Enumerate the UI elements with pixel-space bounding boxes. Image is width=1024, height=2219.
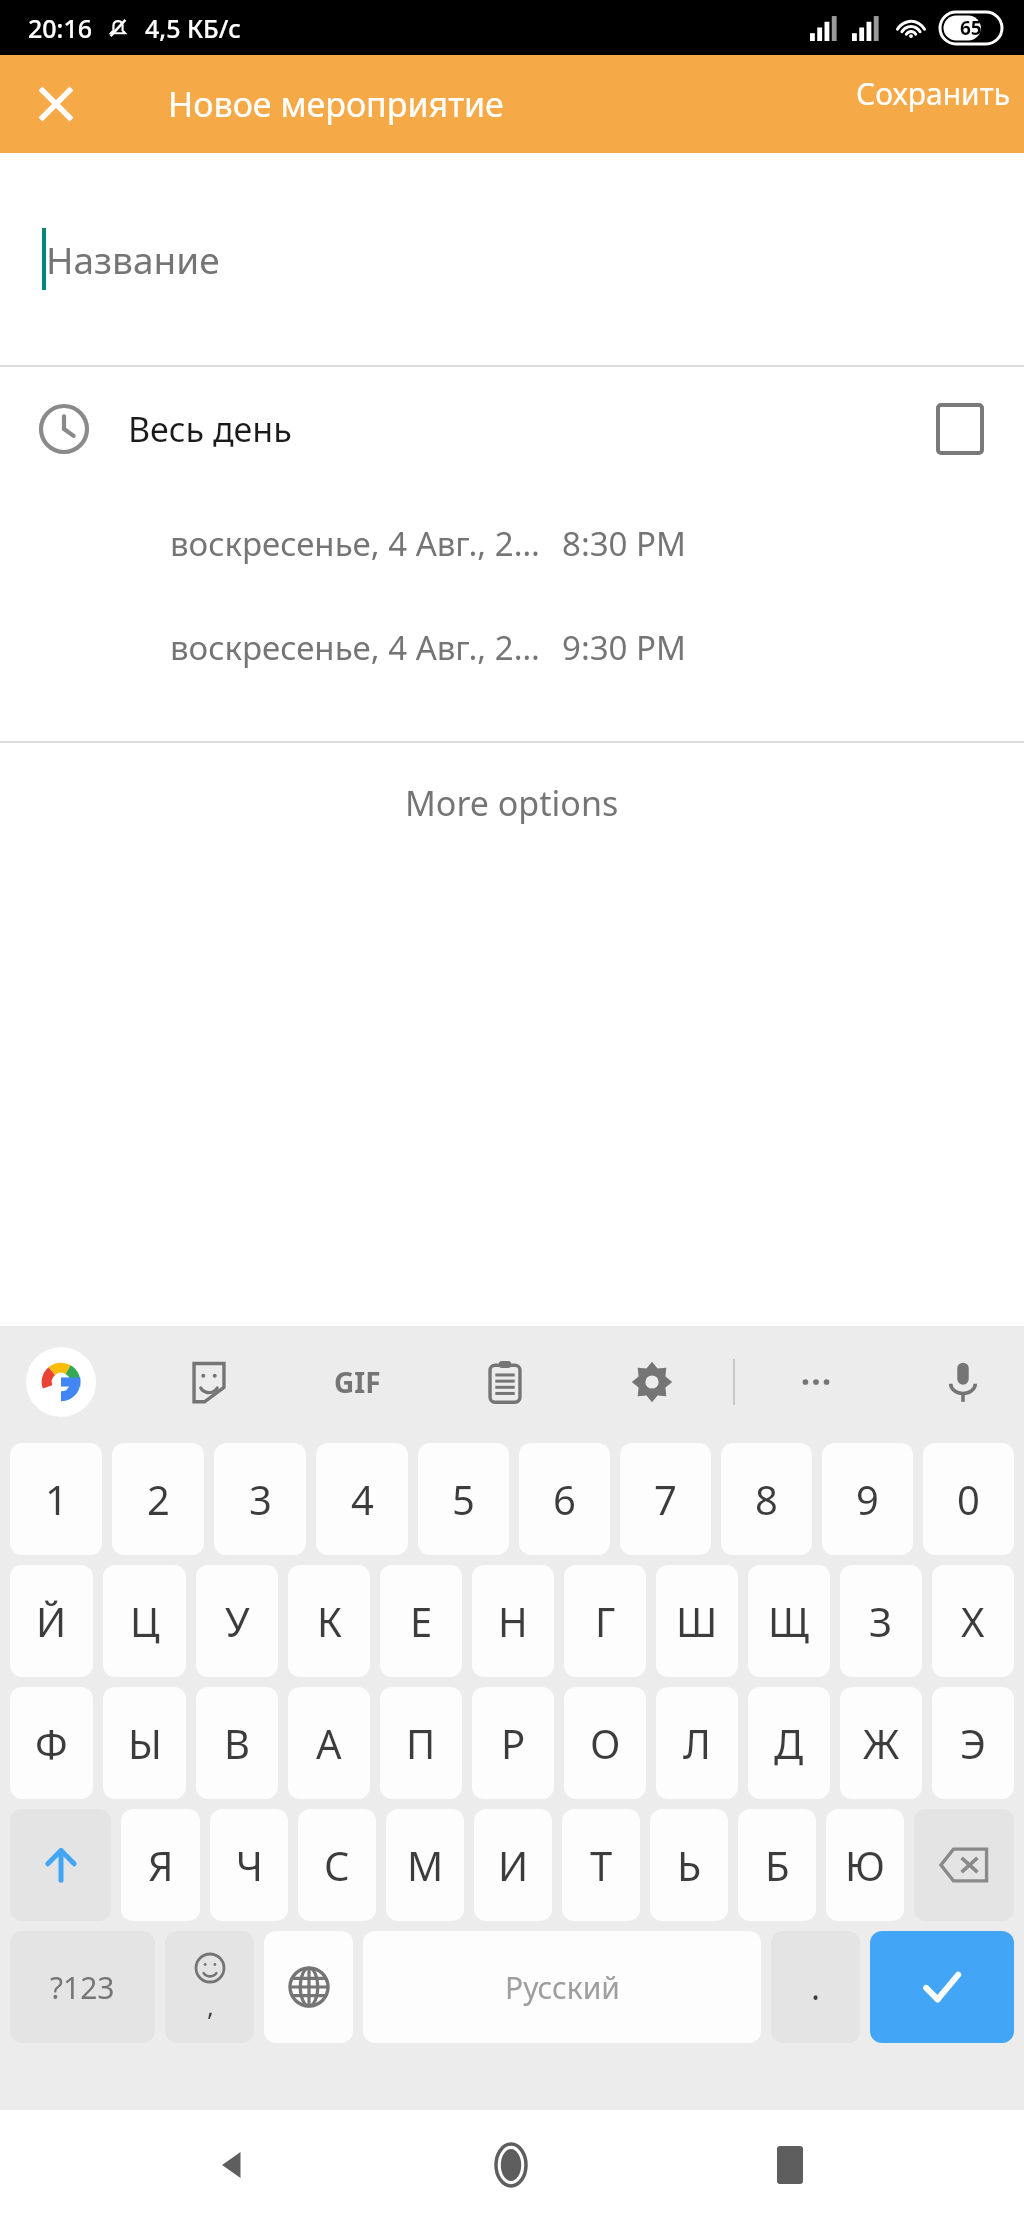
staticText: Б [765,1838,790,1892]
button[interactable]: воскресенье, 4 Авг., 2… [0,491,1024,595]
staticText: М [407,1838,444,1892]
staticText: Н [498,1594,528,1648]
button[interactable]: Название [0,153,1024,365]
button[interactable]: Back [188,2120,278,2210]
button[interactable]: 0 [923,1443,1014,1555]
button[interactable]: More [781,1347,851,1417]
button[interactable]: GIF [322,1347,392,1417]
button[interactable]: Щ [748,1565,830,1677]
button[interactable]: 7 [620,1443,711,1555]
staticText: Д [774,1716,804,1770]
button[interactable]: Э [932,1687,1014,1799]
staticText: У [225,1594,250,1648]
staticText: 7 [654,1472,677,1526]
button[interactable]: Voice input [928,1347,998,1417]
staticText: 2 [147,1472,170,1526]
button[interactable]: Clipboard [470,1347,540,1417]
button[interactable]: А [288,1687,370,1799]
button[interactable]: воскресенье, 4 Авг., 2… [0,595,1024,699]
staticText: Ш [676,1594,718,1648]
button[interactable]: 6 [519,1443,610,1555]
button[interactable]: Ф [10,1687,93,1799]
button[interactable]: Г [564,1565,646,1677]
button[interactable]: Ш [656,1565,738,1677]
staticText: Ч [236,1838,263,1892]
staticText: 9 [856,1472,879,1526]
button[interactable]: Ж [840,1687,922,1799]
button[interactable]: М [386,1809,464,1921]
staticText: ?123 [50,1967,115,2008]
button[interactable]: Й [10,1565,93,1677]
staticText: Ц [130,1594,160,1648]
button[interactable]: Н [472,1565,554,1677]
button[interactable]: Space [363,1931,761,2043]
button[interactable]: Я [121,1809,200,1921]
staticText: воскресенье, 4 Авг., 2… [170,521,540,566]
staticText: 1 [45,1472,68,1526]
button[interactable]: Recent apps [745,2120,835,2210]
staticText: Т [590,1838,613,1892]
button[interactable]: Ч [210,1809,288,1921]
button[interactable]: Shift [10,1809,111,1921]
button[interactable]: Close [28,76,84,132]
button[interactable]: 9 [822,1443,913,1555]
staticText: Е [410,1594,433,1648]
button[interactable]: 2 [112,1443,204,1555]
button[interactable]: Х [932,1565,1014,1677]
button[interactable]: 4 [316,1443,408,1555]
staticText: 0 [957,1472,980,1526]
staticText: Л [683,1716,711,1770]
button[interactable]: Settings [617,1347,687,1417]
button[interactable]: П [380,1687,462,1799]
button[interactable]: Backspace [914,1809,1014,1921]
staticText: , [207,1988,214,2023]
staticText: Г [595,1594,616,1648]
button[interactable]: С [298,1809,376,1921]
button[interactable]: Ь [650,1809,728,1921]
button[interactable]: Весь день [0,367,1024,491]
button[interactable]: Е [380,1565,462,1677]
button[interactable]: 8 [721,1443,812,1555]
button[interactable]: К [288,1565,370,1677]
button[interactable]: Enter [870,1931,1014,2043]
button[interactable]: Т [562,1809,640,1921]
button[interactable]: Google [26,1347,96,1417]
button[interactable]: Emoji [165,1931,254,2043]
staticText: П [406,1716,436,1770]
staticText: 9:30 PM [562,625,686,670]
button[interactable]: 1 [10,1443,102,1555]
button[interactable]: Home [466,2120,556,2210]
button[interactable]: Р [472,1687,554,1799]
staticText: Й [36,1594,67,1648]
button[interactable]: Л [656,1687,738,1799]
staticText: Новое мероприятие [168,81,504,127]
button[interactable]: Б [738,1809,816,1921]
staticText: 3 [249,1472,272,1526]
button[interactable]: З [840,1565,922,1677]
button[interactable]: 3 [214,1443,306,1555]
staticText: Р [501,1716,526,1770]
staticText: А [316,1716,342,1770]
button[interactable]: Ц [103,1565,186,1677]
staticText: 8 [755,1472,778,1526]
button[interactable]: В [196,1687,278,1799]
button[interactable]: . [771,1931,860,2043]
button[interactable]: Sticker [174,1347,244,1417]
button[interactable]: Сохранить [844,55,1024,153]
button[interactable]: У [196,1565,278,1677]
button[interactable]: Change language [264,1931,353,2043]
button[interactable]: Ы [103,1687,186,1799]
button[interactable]: More options [0,743,1024,863]
button[interactable]: ?123 [10,1931,155,2043]
staticText: . [811,1964,821,2010]
staticText: И [498,1838,529,1892]
button[interactable]: Д [748,1687,830,1799]
staticText: Весь день [128,406,292,452]
staticText: Я [148,1838,174,1892]
button[interactable]: 5 [418,1443,509,1555]
button[interactable]: Ю [826,1809,904,1921]
button[interactable]: И [474,1809,552,1921]
staticText: 4 [351,1472,374,1526]
staticText: 4,5 КБ/с [145,11,241,45]
button[interactable]: О [564,1687,646,1799]
